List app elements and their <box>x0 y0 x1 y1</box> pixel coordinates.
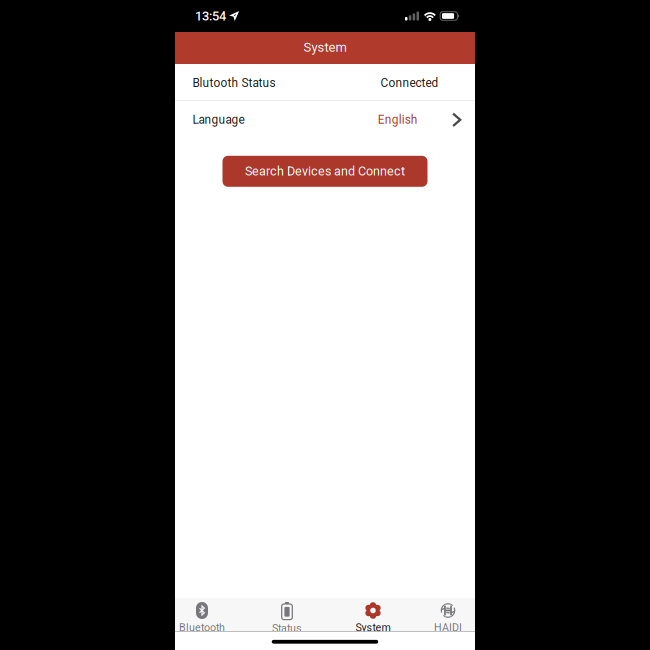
staticText: 13:54 <box>195 8 226 23</box>
staticText: Bluetooth <box>179 621 225 634</box>
staticText: System <box>303 39 346 55</box>
button[interactable]: Bluetooth <box>175 598 250 631</box>
staticText: Status <box>272 622 302 634</box>
button[interactable]: System <box>325 598 400 631</box>
staticText: HAIDI <box>434 621 462 634</box>
button[interactable]: Language <box>175 101 475 137</box>
staticText: Connected <box>380 76 438 90</box>
staticText: Blutooth Status <box>193 76 276 90</box>
staticText: Search Devices and Connect <box>245 164 405 179</box>
button[interactable]: Search Devices and Connect <box>222 156 427 187</box>
button[interactable]: Status <box>250 598 325 631</box>
staticText: Language <box>193 113 245 127</box>
button[interactable]: Blutooth Status <box>175 64 475 100</box>
staticText: English <box>378 113 418 127</box>
button[interactable]: HAIDI <box>400 598 475 631</box>
staticText: System <box>355 621 390 634</box>
